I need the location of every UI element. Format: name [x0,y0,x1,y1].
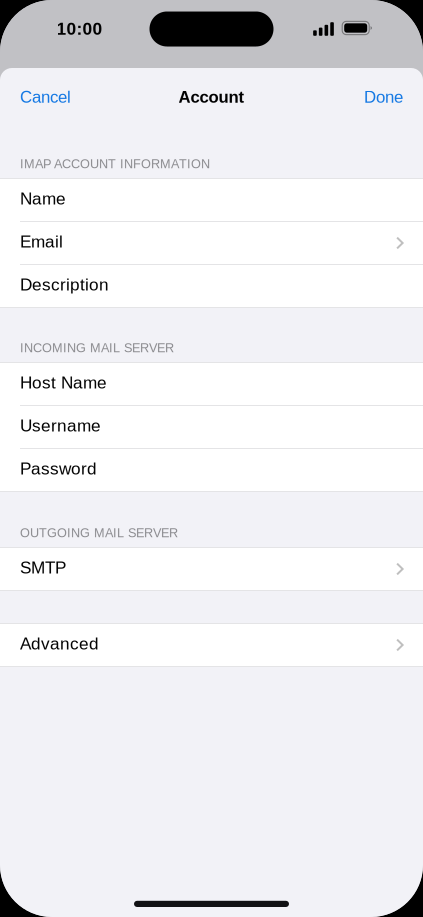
staticText: Advanced [20,634,99,653]
staticText: Username [20,416,101,435]
button[interactable]: SMTP [0,548,423,590]
staticText: Account [178,88,244,106]
button[interactable]: Username [0,406,423,448]
staticText: INCOMING MAIL SERVER [20,341,174,355]
staticText: IMAP ACCOUNT INFORMATION [20,157,210,171]
staticText: Name [20,189,66,208]
button[interactable]: Password [0,449,423,491]
button[interactable]: Advanced [0,624,423,666]
staticText: Description [20,275,109,294]
button[interactable]: Description [0,265,423,307]
staticText: Done [364,88,403,106]
button[interactable]: Email [0,222,423,264]
staticText: 10:00 [56,19,102,38]
button[interactable]: Name [0,179,423,221]
staticText: OUTGOING MAIL SERVER [20,526,178,540]
staticText: SMTP [20,558,66,577]
button[interactable]: Host Name [0,363,423,405]
button[interactable]: Done [360,78,407,116]
staticText: Cancel [20,88,71,106]
staticText: Host Name [20,373,107,392]
button[interactable]: Cancel [16,78,75,116]
staticText: Email [20,232,63,251]
staticText: Password [20,459,97,478]
